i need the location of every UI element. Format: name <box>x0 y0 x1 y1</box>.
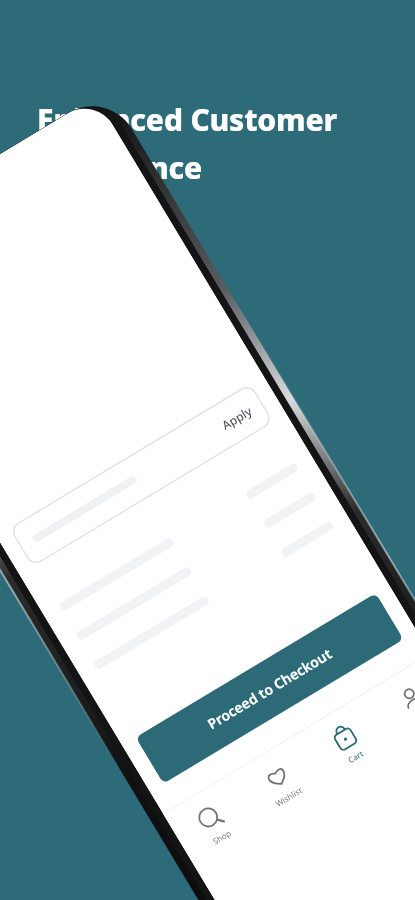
button[interactable]: Enhanced Customer Experience onboarding <box>0 0 415 900</box>
